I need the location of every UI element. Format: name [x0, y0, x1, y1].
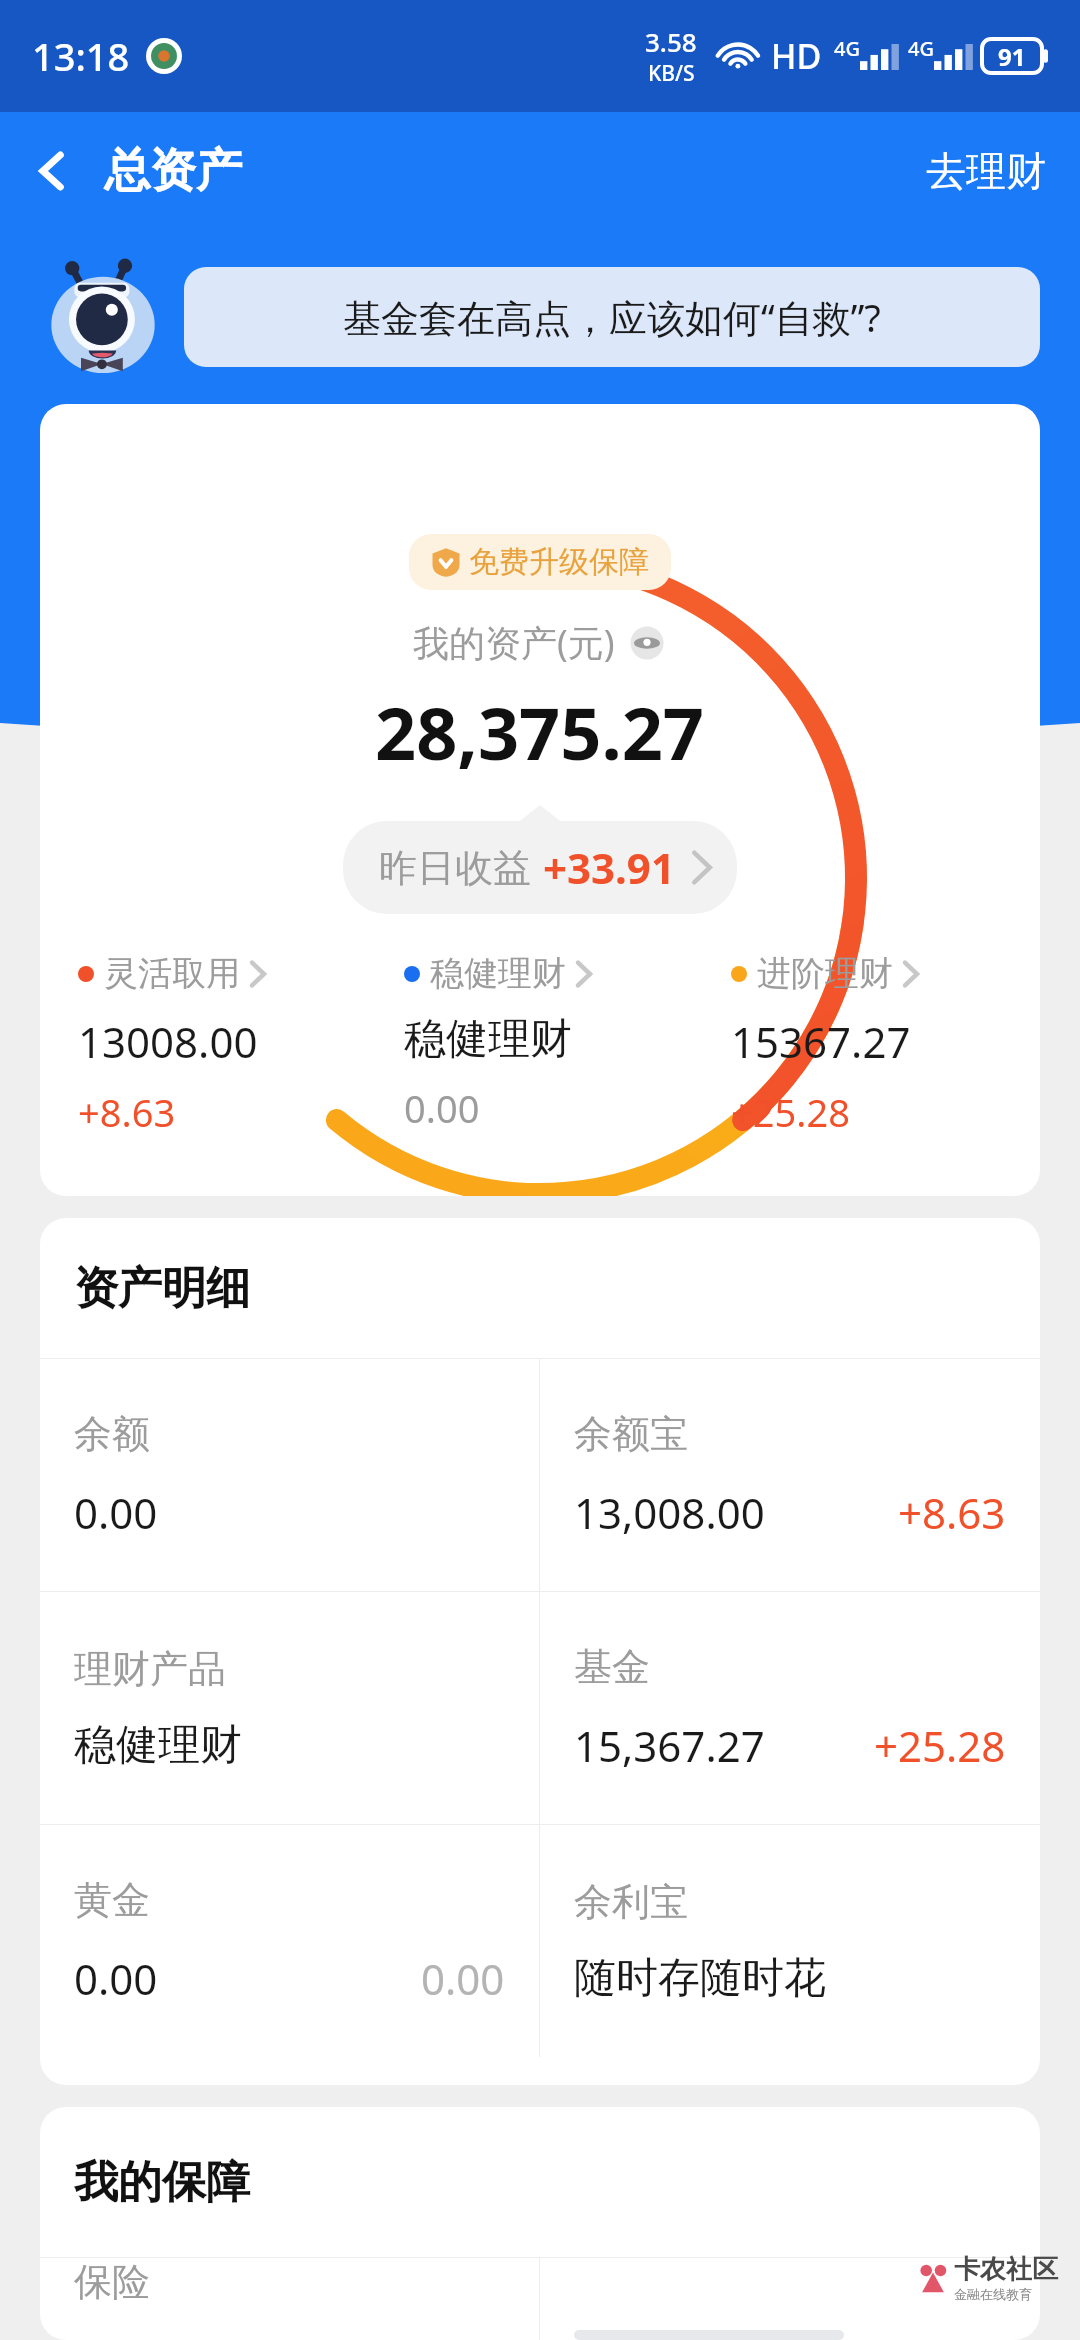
button[interactable]: 基金: [540, 1592, 1040, 1824]
button[interactable]: 灵活取用: [50, 952, 376, 1138]
staticText: 余额宝: [574, 1410, 688, 1458]
button[interactable]: 基金套在高点，应该如何“自救”?: [184, 267, 1040, 367]
staticText: 13,008.00: [574, 1484, 765, 1541]
button[interactable]: Toggle amount visibility: [627, 623, 667, 663]
staticText: 去理财: [926, 146, 1046, 196]
staticText: +25.28: [874, 1717, 1006, 1774]
staticText: 总资产: [104, 142, 242, 200]
staticText: 我的保障: [74, 2155, 250, 2210]
button[interactable]: 理财产品: [40, 1592, 539, 1824]
button[interactable]: 保险: [40, 2258, 539, 2340]
staticText: 昨日收益: [379, 844, 531, 892]
staticText: +33.91: [543, 839, 675, 896]
staticText: +8.63: [898, 1484, 1006, 1541]
staticText: 4G: [908, 35, 934, 62]
staticText: 15,367.27: [574, 1717, 765, 1774]
button[interactable]: 黄金: [40, 1825, 539, 2057]
staticText: 我的资产(元): [413, 618, 615, 667]
button[interactable]: Back: [0, 112, 104, 230]
button[interactable]: 昨日收益: [343, 821, 737, 914]
staticText: 3.58: [645, 24, 697, 59]
button[interactable]: [540, 2258, 1040, 2340]
staticText: 稳健理财: [430, 952, 566, 995]
staticText: 13:18: [32, 30, 130, 82]
staticText: 灵活取用: [104, 952, 240, 995]
staticText: 随时存随时花: [574, 1952, 826, 2005]
staticText: 15367.27: [731, 1013, 911, 1070]
button[interactable]: 进阶理财: [703, 952, 1030, 1138]
staticText: 稳健理财: [404, 1013, 572, 1066]
staticText: 0.00: [74, 1950, 158, 2007]
button[interactable]: 余利宝: [540, 1825, 1040, 2057]
staticText: 保险: [74, 2258, 150, 2306]
staticText: 卡农社区: [954, 2253, 1058, 2286]
staticText: 0.00: [421, 1950, 505, 2007]
staticText: 理财产品: [74, 1645, 226, 1693]
staticText: +8.63: [78, 1086, 176, 1138]
staticText: 资产明细: [74, 1261, 250, 1316]
button[interactable]: 免费升级保障: [409, 534, 671, 590]
staticText: 28,375.27: [375, 683, 705, 781]
staticText: 91: [998, 40, 1026, 73]
staticText: 基金: [574, 1643, 650, 1691]
button[interactable]: 稳健理财: [376, 952, 703, 1134]
button[interactable]: 余额宝: [540, 1359, 1040, 1591]
staticText: 13008.00: [78, 1013, 258, 1070]
staticText: 余额: [74, 1410, 150, 1458]
staticText: HD: [771, 33, 822, 79]
staticText: 基金套在高点，应该如何“自救”?: [343, 291, 881, 343]
staticText: +25.28: [731, 1086, 850, 1138]
staticText: 黄金: [74, 1876, 150, 1924]
staticText: 0.00: [74, 1484, 158, 1541]
staticText: 免费升级保障: [469, 543, 649, 581]
staticText: 进阶理财: [757, 952, 893, 995]
staticText: KB/S: [648, 59, 695, 88]
staticText: 金融在线教育: [954, 2286, 1032, 2302]
button[interactable]: 余额: [40, 1359, 539, 1591]
staticText: 余利宝: [574, 1878, 688, 1926]
staticText: 稳健理财: [74, 1719, 242, 1772]
button[interactable]: 去理财: [892, 112, 1080, 230]
staticText: 0.00: [404, 1082, 480, 1134]
staticText: 4G: [834, 35, 860, 62]
